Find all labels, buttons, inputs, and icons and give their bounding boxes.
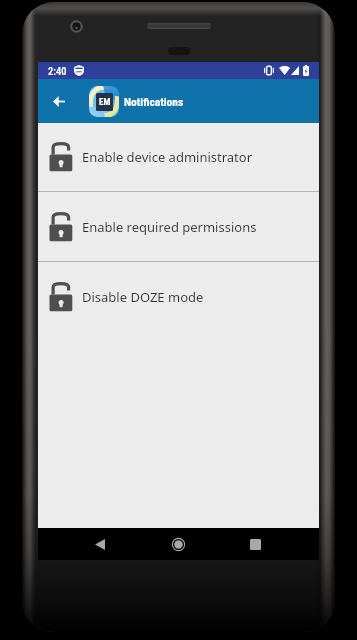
button[interactable]: Back [87, 531, 113, 557]
staticText: 2:40 [48, 65, 67, 77]
staticText: Enable device administrator [82, 148, 253, 166]
button[interactable]: Recent apps [242, 531, 268, 557]
staticText: EM [99, 97, 111, 108]
button[interactable]: Enable required permissions [38, 192, 319, 261]
staticText: Notifications [124, 95, 184, 108]
button[interactable]: Navigate up [43, 81, 75, 121]
button[interactable]: Home [165, 531, 191, 557]
button[interactable]: Enable device administrator [38, 123, 319, 191]
staticText: Disable DOZE mode [82, 288, 204, 306]
button[interactable]: Disable DOZE mode [38, 262, 319, 332]
staticText: Enable required permissions [82, 218, 257, 236]
